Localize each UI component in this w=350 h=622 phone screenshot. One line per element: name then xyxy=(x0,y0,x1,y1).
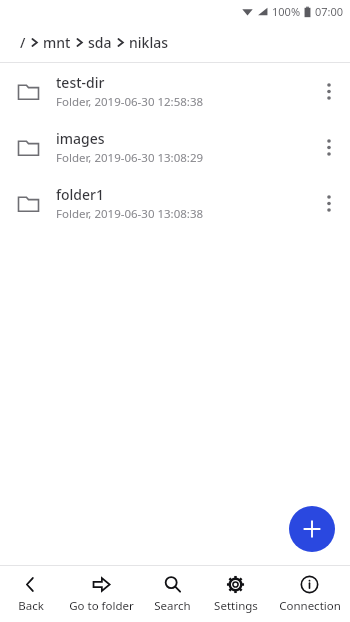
staticText: Folder, 2019-06-30 13:08:29 xyxy=(56,150,204,166)
staticText: Search xyxy=(154,598,191,614)
button[interactable]: Back xyxy=(0,569,61,620)
button[interactable]: mnt xyxy=(43,33,71,52)
button[interactable]: More options xyxy=(308,119,350,175)
staticText: 100% xyxy=(272,4,301,19)
staticText: / xyxy=(20,33,26,52)
button[interactable]: Search xyxy=(142,569,202,620)
button[interactable]: test-dir xyxy=(0,63,350,119)
button[interactable]: folder1 xyxy=(0,175,350,231)
staticText: sda xyxy=(88,33,112,52)
button[interactable]: Connection xyxy=(269,569,350,620)
staticText: folder1 xyxy=(56,185,104,204)
button[interactable]: images xyxy=(0,119,350,175)
staticText: images xyxy=(56,129,105,148)
button[interactable]: Go to folder xyxy=(61,569,142,620)
staticText: mnt xyxy=(43,33,71,52)
button[interactable]: niklas xyxy=(129,33,168,52)
staticText: Connection xyxy=(279,598,341,614)
button[interactable]: Settings xyxy=(202,569,269,620)
staticText: test-dir xyxy=(56,73,105,92)
staticText: Folder, 2019-06-30 12:58:38 xyxy=(56,94,204,110)
staticText: Back xyxy=(18,598,44,614)
staticText: 07:00 xyxy=(315,4,344,19)
button[interactable]: More options xyxy=(308,63,350,119)
button[interactable]: / xyxy=(20,33,26,52)
staticText: Folder, 2019-06-30 13:08:38 xyxy=(56,206,204,222)
staticText: niklas xyxy=(129,33,168,52)
button[interactable]: sda xyxy=(88,33,112,52)
staticText: Settings xyxy=(214,598,258,614)
staticText: Go to folder xyxy=(69,598,134,614)
button[interactable]: More options xyxy=(308,175,350,231)
button[interactable]: Add xyxy=(289,506,335,552)
